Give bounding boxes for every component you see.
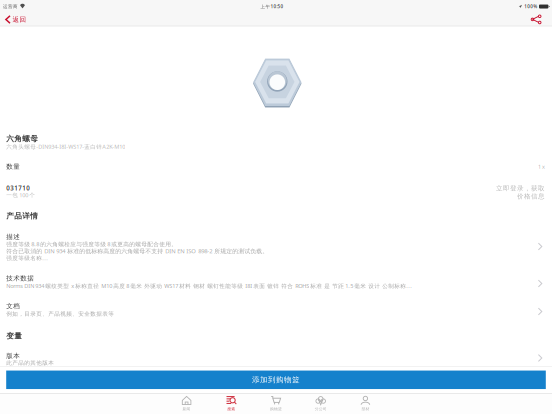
- staticText: 例如，目录页、产品视频、安全数据表等: [6, 310, 114, 318]
- staticText: 搜索: [227, 406, 235, 411]
- staticText: 立即登录，获取: [496, 184, 545, 192]
- staticText: 分公司: [315, 406, 327, 411]
- staticText: 运营商: [3, 4, 18, 9]
- button[interactable]: 搜索: [209, 393, 254, 414]
- staticText: 文档: [6, 302, 20, 310]
- staticText: 符合已取消的 DIN 934 标准的低标称高度的六角螺母不支持 DIN EN I…: [6, 247, 268, 255]
- staticText: 描述: [6, 233, 20, 241]
- staticText: 六角头螺母-DIN934-I8I-WS17-蓝白锌A2K-M10: [6, 143, 125, 150]
- staticText: 型材: [361, 406, 369, 411]
- staticText: 六角螺母: [6, 134, 38, 143]
- staticText: 返回: [12, 15, 26, 24]
- staticText: 技术数据: [6, 274, 34, 282]
- staticText: 100%: [524, 3, 537, 10]
- staticText: 强度等级 8.8 的六角螺栓应与强度等级 8 或更高的螺母配合使用。: [6, 240, 177, 248]
- button[interactable]: 分公司: [298, 393, 343, 414]
- button[interactable]: 购物篮: [254, 393, 298, 414]
- staticText: 变量: [6, 331, 22, 341]
- staticText: 一包 100 个: [6, 191, 35, 199]
- staticText: 添加到购物篮: [252, 375, 300, 385]
- button[interactable]: [0, 270, 552, 296]
- button[interactable]: 添加到购物篮: [6, 371, 546, 389]
- staticText: 上午10:50: [260, 3, 283, 10]
- button[interactable]: [0, 229, 552, 263]
- staticText: 031710: [6, 184, 30, 192]
- staticText: 新闻: [183, 406, 191, 411]
- staticText: 购物篮: [270, 406, 282, 411]
- staticText: 数量: [6, 162, 20, 171]
- button[interactable]: [0, 348, 552, 368]
- staticText: 强度等级名称...: [6, 254, 48, 262]
- staticText: Norms DIN 934 螺纹类型 x 标称直径 M10 高度 8 毫米 外驱…: [6, 282, 412, 290]
- staticText: 1 x: [538, 163, 545, 170]
- button[interactable]: 返回: [0, 12, 32, 26]
- staticText: 此产品的其他版本: [6, 359, 54, 366]
- button[interactable]: 新闻: [164, 393, 209, 414]
- button[interactable]: 型材: [343, 393, 388, 414]
- staticText: 版本: [6, 352, 20, 360]
- button[interactable]: 分享: [524, 13, 552, 26]
- staticText: 产品详情: [6, 211, 38, 221]
- staticText: 价格信息: [517, 192, 545, 200]
- button[interactable]: [0, 298, 552, 324]
